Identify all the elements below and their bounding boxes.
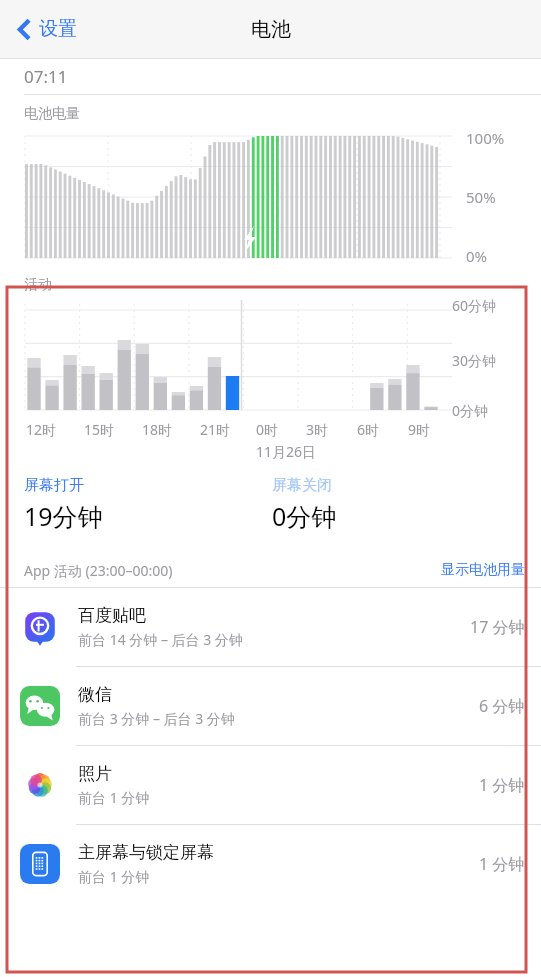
button[interactable]: 显示电池用量 — [441, 561, 525, 579]
staticText: 30分钟 — [452, 351, 497, 370]
staticText: App 活动 (23:00–00:00) — [24, 561, 173, 580]
staticText: 18时 — [142, 420, 173, 439]
button[interactable]: 主屏幕与锁定屏幕 — [0, 825, 541, 903]
staticText: 21时 — [200, 420, 231, 439]
staticText: 前台 14 分钟 – 后台 3 分钟 — [78, 630, 243, 649]
button[interactable]: 设置 — [10, 9, 85, 49]
staticText: 前台 1 分钟 — [78, 867, 150, 886]
staticText: 电池电量 — [24, 105, 80, 123]
staticText: 07:11 — [24, 65, 68, 88]
staticText: 19分钟 — [24, 499, 103, 533]
staticText: 前台 3 分钟 – 后台 3 分钟 — [78, 709, 235, 728]
staticText: 电池 — [251, 17, 291, 42]
staticText: 12时 — [26, 420, 57, 439]
staticText: 百度贴吧 — [78, 605, 146, 626]
staticText: 0时 — [256, 420, 279, 439]
button[interactable]: 百度贴吧 — [0, 588, 541, 666]
staticText: 0分钟 — [452, 401, 489, 420]
staticText: 主屏幕与锁定屏幕 — [78, 842, 214, 863]
staticText: 3时 — [306, 420, 329, 439]
staticText: 屏幕打开 — [24, 476, 84, 495]
button[interactable]: 照片 — [0, 746, 541, 824]
staticText: 60分钟 — [452, 296, 497, 315]
staticText: 15时 — [84, 420, 115, 439]
staticText: 屏幕关闭 — [272, 476, 332, 495]
staticText: 17 分钟 — [470, 616, 525, 638]
staticText: 微信 — [78, 684, 112, 705]
staticText: 1 分钟 — [479, 853, 525, 875]
staticText: 照片 — [78, 763, 112, 784]
staticText: 9时 — [408, 420, 431, 439]
staticText: 6 分钟 — [479, 695, 525, 717]
staticText: 0分钟 — [272, 499, 337, 533]
staticText: 活动 — [24, 276, 52, 294]
staticText: 前台 1 分钟 — [78, 788, 150, 807]
staticText: 6时 — [357, 420, 380, 439]
staticText: 0% — [466, 246, 488, 266]
button[interactable]: 微信 — [0, 667, 541, 745]
staticText: 100% — [466, 128, 505, 148]
staticText: 1 分钟 — [479, 774, 525, 796]
staticText: 50% — [466, 187, 496, 207]
staticText: 设置 — [39, 17, 77, 41]
staticText: 11月26日 — [256, 442, 317, 461]
staticText: 显示电池用量 — [441, 561, 525, 579]
